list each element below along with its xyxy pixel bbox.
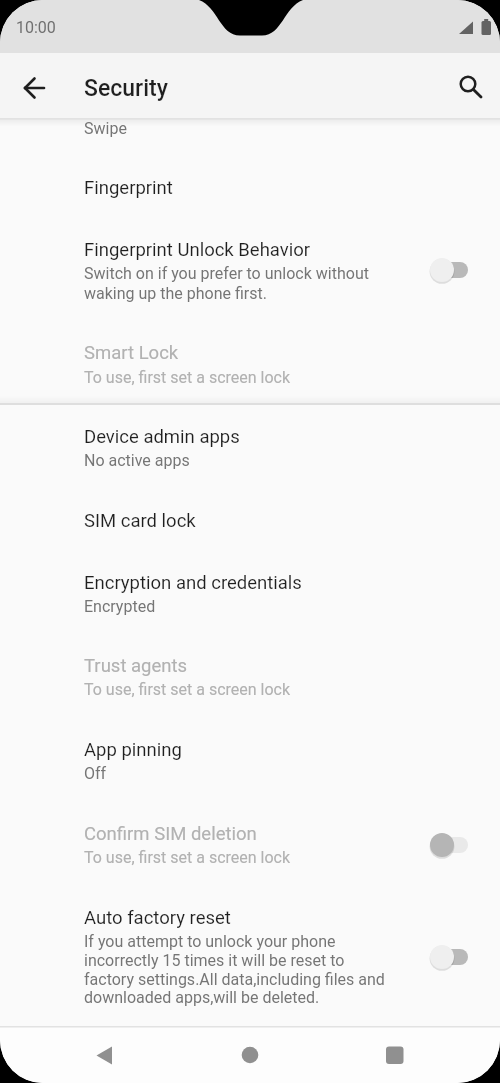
staticText: SIM card lock [84, 510, 196, 532]
staticText: Off [84, 764, 107, 783]
staticText: No active apps [84, 451, 190, 470]
button[interactable] [0, 222, 500, 318]
button[interactable] [0, 636, 500, 720]
button[interactable] [0, 152, 500, 222]
staticText: Security [84, 75, 168, 102]
button[interactable] [9, 64, 57, 112]
staticText: downloaded apps,will be deleted. [84, 988, 320, 1007]
staticText: Device admin apps [84, 426, 240, 448]
staticText: Fingerprint Unlock Behavior [84, 239, 311, 261]
button[interactable] [0, 490, 500, 552]
staticText: incorrectly 15 times it will be reset to [84, 951, 345, 970]
button[interactable] [445, 61, 493, 109]
staticText: To use, first set a screen lock [84, 680, 291, 699]
staticText: waking up the phone first. [84, 284, 267, 303]
staticText: If you attempt to unlock your phone [84, 932, 336, 951]
button[interactable] [430, 945, 470, 969]
button[interactable] [79, 1031, 127, 1079]
button[interactable] [0, 318, 500, 403]
staticText: To use, first set a screen lock [84, 848, 291, 867]
button[interactable] [0, 406, 500, 490]
staticText: Fingerprint [84, 177, 173, 199]
staticText: App pinning [84, 739, 182, 761]
staticText: Confirm SIM deletion [84, 823, 257, 845]
staticText: Switch on if you prefer to unlock withou… [84, 264, 369, 283]
staticText: Encryption and credentials [84, 572, 302, 594]
button[interactable] [0, 720, 500, 804]
staticText: Encrypted [84, 597, 156, 616]
button[interactable] [430, 258, 470, 282]
button[interactable] [0, 118, 500, 152]
staticText: 10:00 [16, 18, 56, 37]
button[interactable] [371, 1031, 419, 1079]
staticText: Trust agents [84, 655, 188, 677]
button[interactable] [0, 804, 500, 888]
staticText: Auto factory reset [84, 907, 231, 929]
button[interactable] [226, 1031, 274, 1079]
staticText: factory settings.All data,including file… [84, 970, 385, 989]
button[interactable] [430, 833, 470, 857]
button[interactable] [0, 888, 500, 1020]
button[interactable] [0, 552, 500, 636]
staticText: Smart Lock [84, 342, 179, 364]
staticText: Swipe [84, 119, 127, 138]
staticText: To use, first set a screen lock [84, 368, 291, 387]
